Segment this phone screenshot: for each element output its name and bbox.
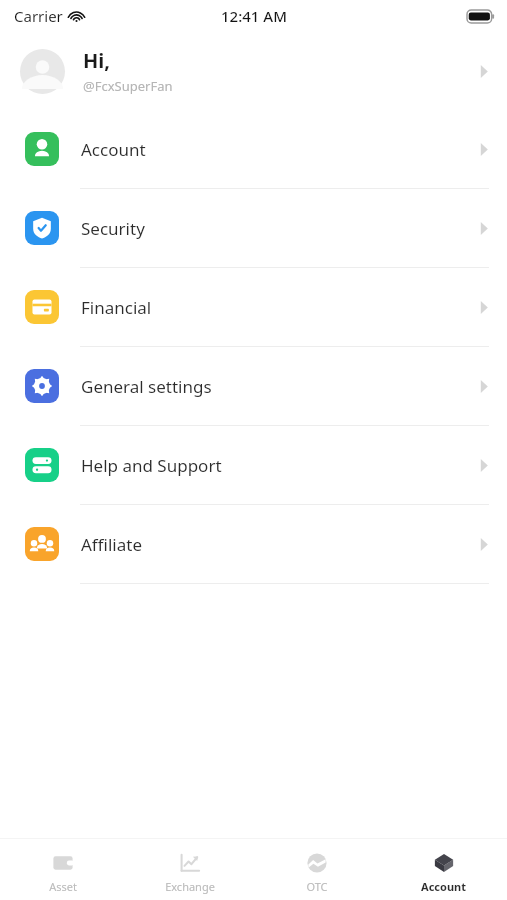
staticText: Hi, (83, 47, 110, 74)
button[interactable]: OTC (253, 845, 380, 894)
button[interactable]: Financial (0, 268, 507, 346)
staticText: Affiliate (81, 533, 479, 556)
button[interactable]: Help and Support (0, 426, 507, 504)
button[interactable]: Security (0, 189, 507, 267)
button[interactable]: Affiliate (0, 505, 507, 583)
staticText: 12:41 AM (221, 6, 287, 26)
button[interactable]: Hi, (0, 32, 507, 110)
staticText: Account (81, 138, 479, 161)
button[interactable]: Account (380, 845, 507, 894)
button[interactable]: General settings (0, 347, 507, 425)
staticText: Security (81, 217, 479, 240)
staticText: General settings (81, 375, 479, 398)
button[interactable]: Exchange (126, 845, 253, 894)
staticText: Exchange (165, 879, 215, 894)
button[interactable]: Account (0, 110, 507, 188)
staticText: Carrier (14, 6, 63, 26)
button[interactable]: Asset (0, 845, 126, 894)
staticText: Account (421, 879, 466, 894)
staticText: Help and Support (81, 454, 479, 477)
staticText: OTC (306, 879, 328, 894)
staticText: @FcxSuperFan (83, 77, 173, 95)
staticText: Asset (49, 879, 77, 894)
staticText: Financial (81, 296, 479, 319)
